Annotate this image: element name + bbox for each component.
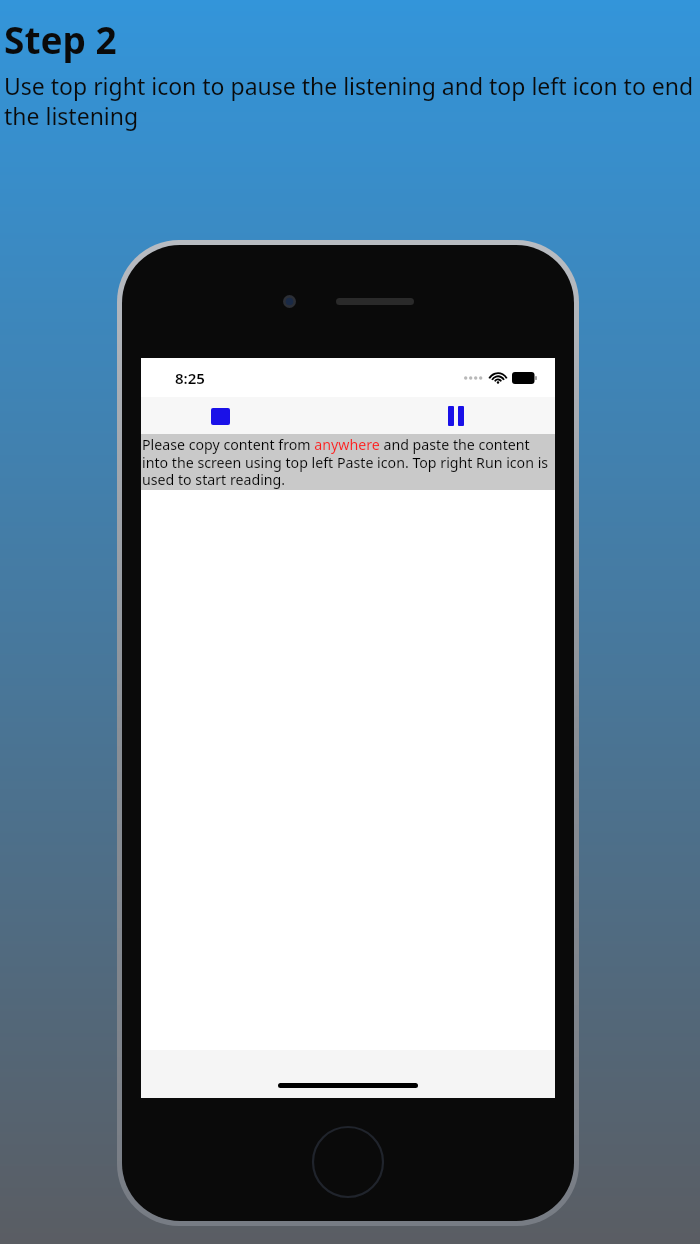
staticText: Please copy content from anywhere and pa… — [142, 435, 553, 489]
staticText: Use top right icon to pause the listenin… — [4, 70, 696, 132]
staticText: 8:25 — [175, 368, 205, 388]
button[interactable]: Stop listening — [203, 399, 237, 433]
button[interactable]: Pause listening — [439, 399, 473, 433]
staticText: Step 2 — [4, 14, 117, 64]
